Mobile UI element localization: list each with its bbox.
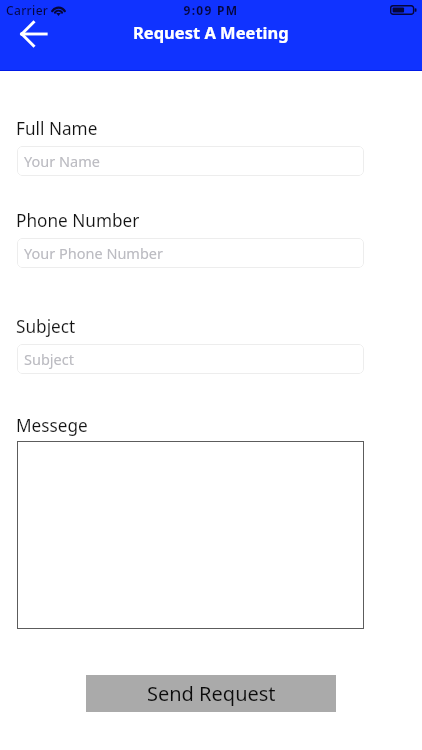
staticText: 9:09 PM bbox=[0, 2, 422, 18]
staticText: Full Name bbox=[16, 117, 98, 140]
staticText: Your Name bbox=[24, 151, 100, 171]
button[interactable]: Subject bbox=[17, 344, 364, 374]
staticText: Carrier bbox=[6, 2, 49, 18]
staticText: Subject bbox=[24, 349, 74, 369]
button[interactable]: Back bbox=[13, 13, 55, 55]
staticText: Phone Number bbox=[16, 209, 140, 232]
button[interactable]: Your Phone Number bbox=[17, 238, 364, 268]
button[interactable] bbox=[17, 441, 364, 629]
button[interactable]: Your Name bbox=[17, 146, 364, 176]
staticText: Send Request bbox=[147, 680, 276, 707]
staticText: Subject bbox=[16, 315, 76, 338]
staticText: Your Phone Number bbox=[24, 243, 164, 263]
staticText: Messege bbox=[16, 414, 88, 437]
staticText: Request A Meeting bbox=[133, 21, 289, 43]
button[interactable]: Send Request bbox=[86, 675, 336, 712]
